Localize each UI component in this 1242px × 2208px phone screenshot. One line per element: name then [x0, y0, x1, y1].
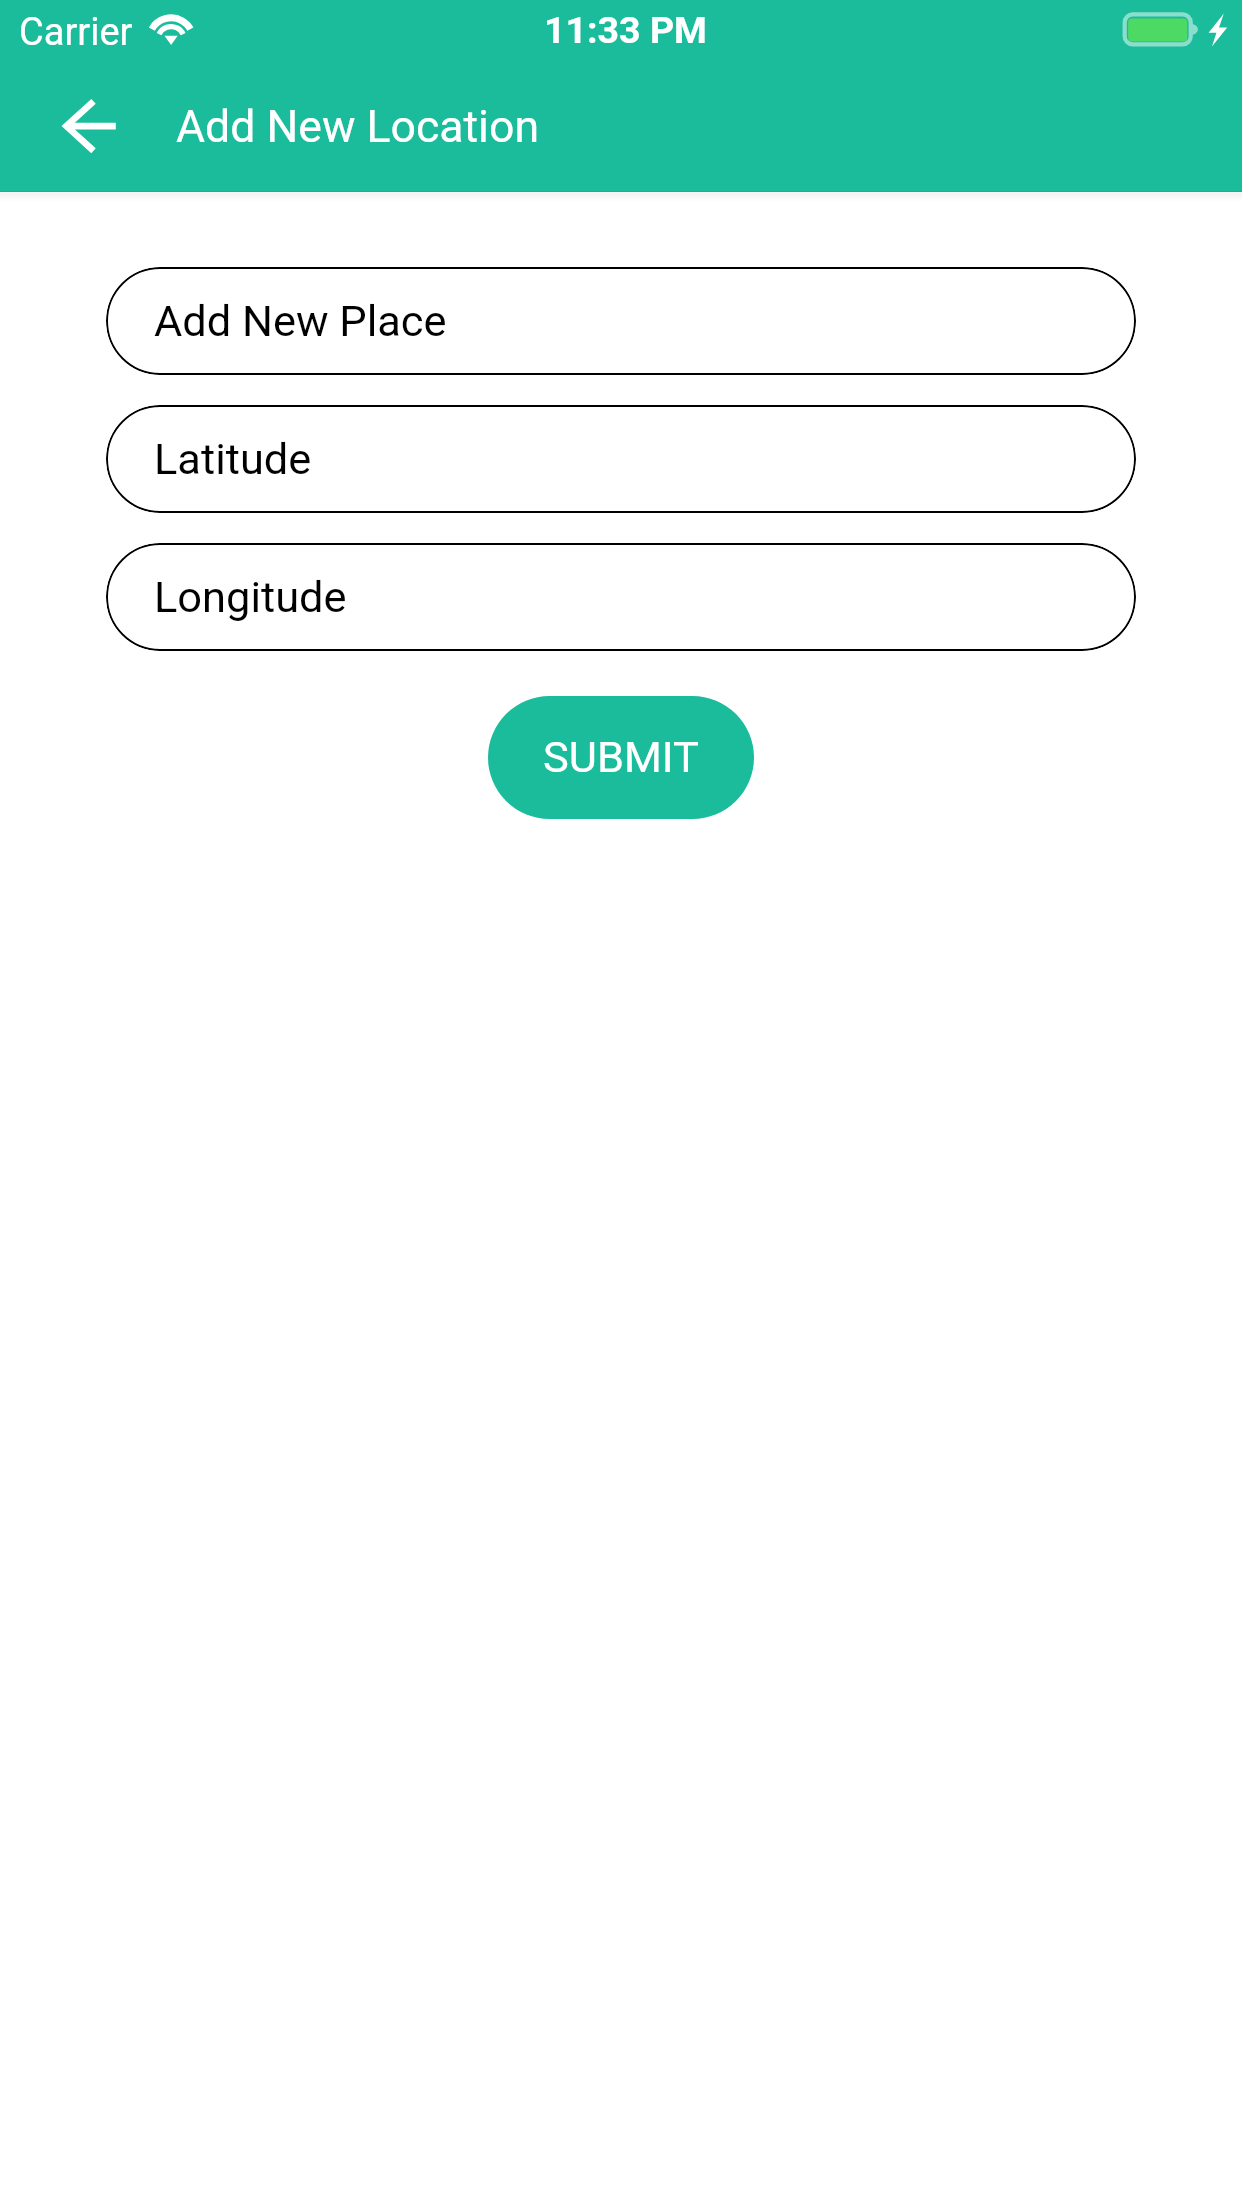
button[interactable]: SUBMIT [488, 696, 754, 819]
staticText: Latitude [154, 434, 312, 485]
staticText: 11:33 PM [544, 8, 707, 52]
staticText: Longitude [154, 572, 347, 623]
staticText: SUBMIT [543, 732, 699, 783]
staticText: Add New Place [154, 296, 447, 347]
button[interactable]: Latitude [106, 405, 1136, 513]
staticText: Add New Location [176, 101, 540, 153]
button[interactable]: Longitude [106, 543, 1136, 651]
staticText: Carrier [19, 10, 133, 55]
button[interactable]: Add New Place [106, 267, 1136, 375]
button[interactable]: Back [53, 90, 125, 162]
